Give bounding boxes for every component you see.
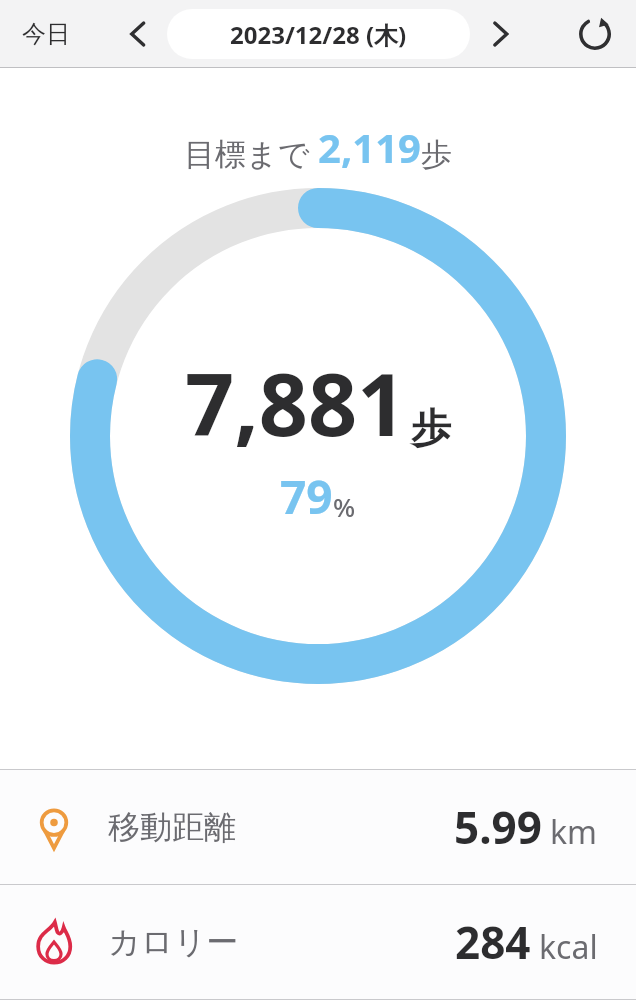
staticText: km [550, 810, 598, 854]
staticText: 歩 [411, 403, 451, 453]
staticText: 2023/12/28 (木) [230, 18, 407, 51]
button[interactable]: 今日 [10, 13, 82, 55]
staticText: 移動距離 [108, 807, 236, 847]
button[interactable]: Previous day [112, 8, 164, 60]
button[interactable]: Distance [0, 770, 636, 884]
staticText: % [333, 489, 356, 524]
staticText: 今日 [22, 19, 70, 49]
other: Distance [32, 805, 76, 849]
button[interactable]: Next day [474, 8, 526, 60]
staticText: 79 [280, 465, 333, 528]
staticText: 284 [455, 912, 531, 972]
staticText: 2,119 [318, 120, 421, 174]
staticText: 7,881 [185, 344, 407, 461]
other: Calories [32, 920, 76, 964]
button[interactable]: 2023/12/28 (木) [167, 9, 470, 59]
staticText: 目標まで [184, 135, 310, 174]
staticText: 歩 [421, 135, 452, 174]
staticText: kcal [539, 925, 598, 969]
button[interactable]: Calories [0, 885, 636, 999]
staticText: 5.99 [454, 797, 542, 857]
button[interactable]: Refresh [568, 7, 622, 61]
staticText: カロリー [108, 922, 239, 962]
